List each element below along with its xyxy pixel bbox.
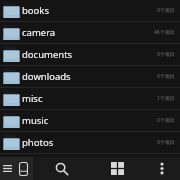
staticText: photos bbox=[22, 136, 157, 149]
button[interactable]: misc bbox=[0, 88, 180, 110]
staticText: 46个项目 bbox=[154, 29, 175, 36]
button[interactable]: documents bbox=[0, 44, 180, 66]
button[interactable]: Menu bbox=[0, 157, 14, 180]
staticText: downloads bbox=[22, 70, 157, 83]
staticText: 1个项目 bbox=[157, 95, 175, 102]
staticText: videos bbox=[22, 158, 157, 171]
staticText: 0个项目 bbox=[157, 73, 175, 80]
button[interactable]: videos bbox=[0, 154, 180, 176]
staticText: music bbox=[22, 114, 157, 127]
staticText: 0个项目 bbox=[157, 51, 175, 58]
button[interactable]: photos bbox=[0, 132, 180, 154]
button[interactable]: camera bbox=[0, 22, 180, 44]
staticText: books bbox=[22, 4, 157, 17]
button[interactable]: Grid view bbox=[91, 157, 144, 180]
button[interactable]: Search bbox=[33, 157, 91, 180]
button[interactable]: books bbox=[0, 0, 180, 22]
button[interactable]: downloads bbox=[0, 66, 180, 88]
button[interactable]: More options bbox=[144, 157, 180, 180]
staticText: 0个项目 bbox=[157, 7, 175, 14]
button[interactable]: Storage bbox=[14, 157, 33, 180]
staticText: 3个项目 bbox=[157, 161, 175, 168]
staticText: camera bbox=[22, 26, 154, 39]
staticText: 0个项目 bbox=[157, 139, 175, 146]
staticText: 0个项目 bbox=[157, 117, 175, 124]
button[interactable]: music bbox=[0, 110, 180, 132]
staticText: documents bbox=[22, 48, 157, 61]
staticText: misc bbox=[22, 92, 157, 105]
